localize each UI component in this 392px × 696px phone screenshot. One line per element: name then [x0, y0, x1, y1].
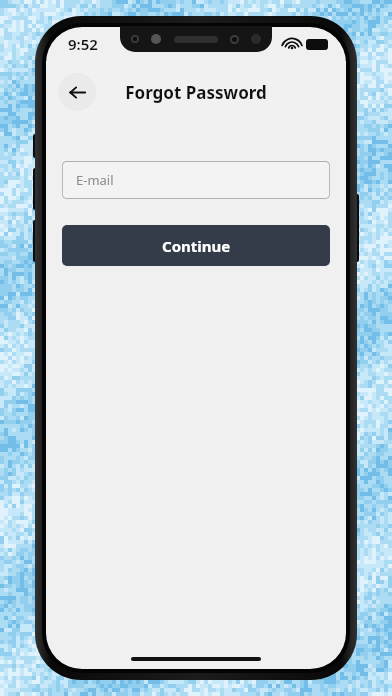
staticText: Forgot Password: [125, 81, 267, 104]
staticText: Continue: [162, 236, 231, 256]
button[interactable]: E-mail: [62, 161, 330, 199]
staticText: 9:52: [68, 34, 98, 54]
button[interactable]: Back: [58, 73, 96, 111]
staticText: E-mail: [76, 171, 114, 189]
button[interactable]: Continue: [62, 225, 330, 266]
